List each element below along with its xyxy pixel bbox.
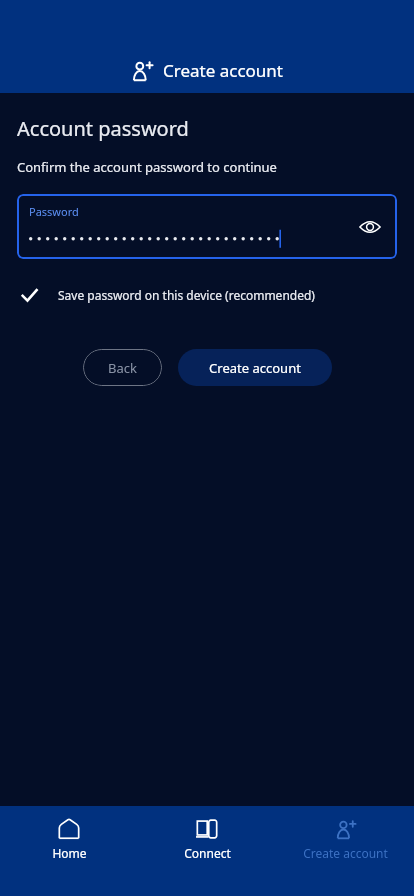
button[interactable]: Home xyxy=(0,806,138,861)
staticText: Connect xyxy=(184,845,231,861)
button[interactable]: Show password xyxy=(355,212,385,242)
button[interactable]: Create account xyxy=(178,349,332,386)
staticText: Back xyxy=(108,359,137,377)
button[interactable]: Back xyxy=(83,349,162,386)
button[interactable]: Password xyxy=(17,194,397,259)
button[interactable]: Create account xyxy=(276,806,414,861)
button[interactable]: Create account xyxy=(131,59,283,82)
staticText: Account password xyxy=(17,115,189,142)
staticText: Password xyxy=(29,204,79,219)
staticText: Create account xyxy=(209,359,301,377)
staticText: Create account xyxy=(163,59,283,82)
button[interactable]: Connect xyxy=(138,806,276,861)
staticText: Create account xyxy=(303,845,388,861)
staticText: Confirm the account password to continue xyxy=(17,158,277,176)
staticText: Home xyxy=(52,845,87,861)
staticText: Save password on this device (recommende… xyxy=(58,287,315,303)
button[interactable]: Save password on this device (recommende… xyxy=(17,279,397,311)
